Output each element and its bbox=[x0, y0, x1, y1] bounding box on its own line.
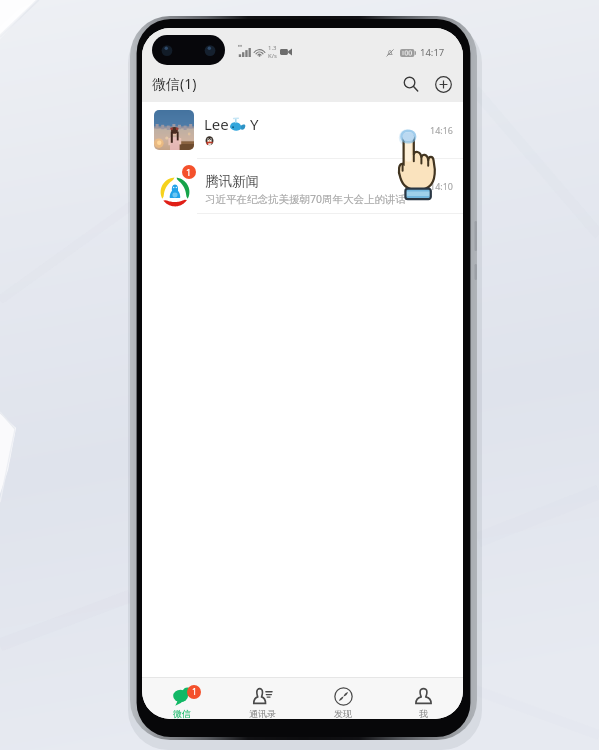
staticText: K/s bbox=[268, 52, 277, 60]
staticText: 14:16 bbox=[430, 124, 454, 136]
staticText: 微信 bbox=[173, 708, 191, 719]
button[interactable]: Search bbox=[398, 71, 424, 97]
staticText: 14:10 bbox=[430, 180, 454, 192]
staticText: 发现 bbox=[334, 708, 352, 719]
button[interactable]: 1 bbox=[142, 678, 222, 719]
staticText: 1.3 bbox=[268, 44, 277, 52]
button[interactable]: 发现 bbox=[303, 678, 383, 719]
staticText: 微信(1) bbox=[152, 74, 197, 93]
staticText: 14:17 bbox=[420, 46, 445, 59]
button[interactable]: Add bbox=[430, 71, 456, 97]
button[interactable]: 通讯录 bbox=[222, 678, 302, 719]
button[interactable]: 1 bbox=[142, 159, 463, 213]
staticText: 1 bbox=[186, 166, 192, 178]
button[interactable]: Lee bbox=[142, 102, 463, 158]
button[interactable]: 我 bbox=[383, 678, 463, 719]
staticText: Y bbox=[246, 114, 259, 134]
staticText: 1 bbox=[192, 686, 197, 698]
staticText: Lee bbox=[204, 114, 229, 134]
staticText: 通讯录 bbox=[249, 708, 276, 719]
staticText: 腾讯新闻 bbox=[205, 173, 259, 190]
staticText: 我 bbox=[419, 708, 428, 719]
staticText: 习近平在纪念抗美援朝70周年大会上的讲话 bbox=[205, 192, 407, 206]
